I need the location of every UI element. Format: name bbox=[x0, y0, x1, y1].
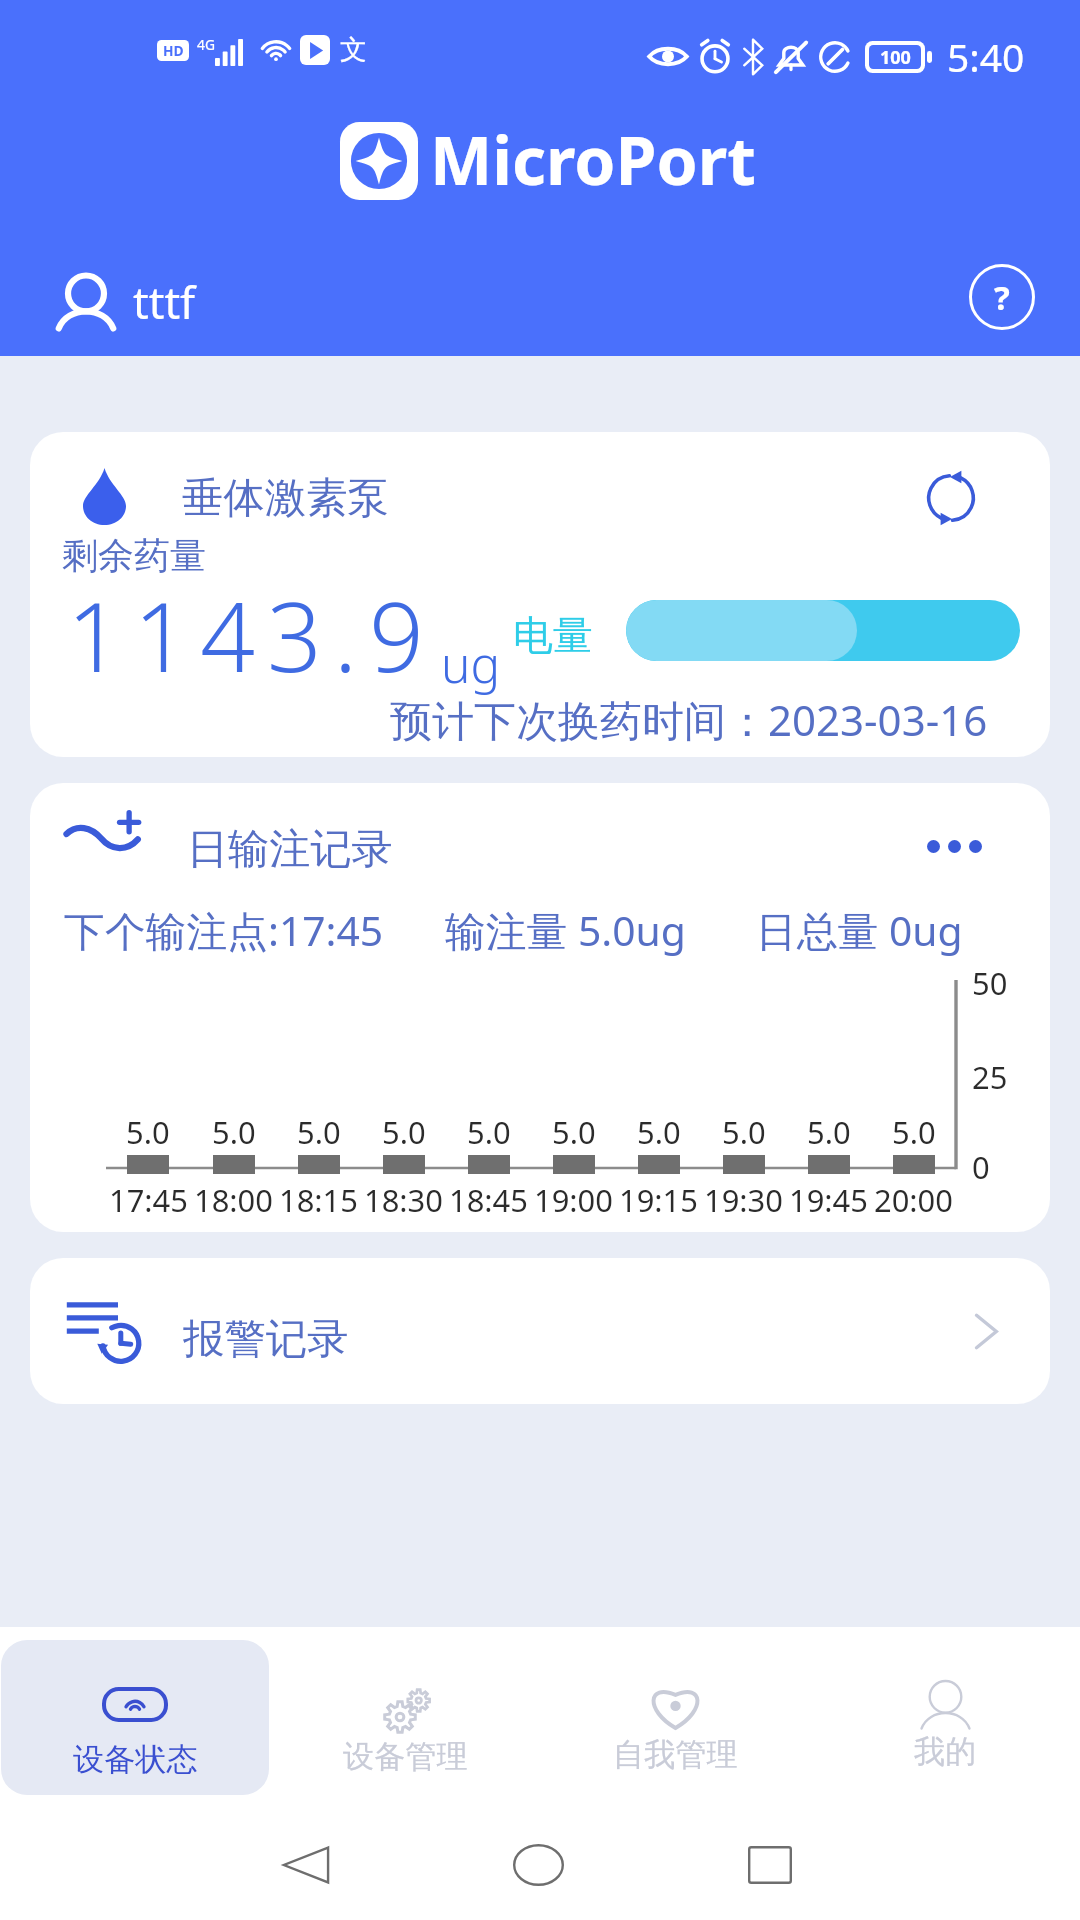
button[interactable]: Home bbox=[493, 1820, 583, 1910]
staticText: 5.0 bbox=[467, 1111, 511, 1153]
staticText: 100 bbox=[880, 45, 911, 69]
staticText: ? bbox=[994, 275, 1010, 320]
staticText: 输注量 5.0ug bbox=[445, 902, 686, 958]
staticText: 18:00 bbox=[194, 1179, 273, 1221]
staticText: 我的 bbox=[914, 1732, 977, 1771]
button[interactable]: Back bbox=[261, 1820, 351, 1910]
staticText: 预计下次换药时间：2023-03-16 bbox=[390, 691, 988, 748]
staticText: 19:00 bbox=[534, 1179, 613, 1221]
staticText: MicroPort bbox=[430, 114, 756, 204]
staticText: 下个输注点:17:45 bbox=[64, 902, 384, 958]
staticText: 日输注记录 bbox=[187, 823, 393, 875]
button[interactable]: 自我管理 bbox=[540, 1627, 810, 1817]
button[interactable]: 日输注记录 bbox=[30, 783, 1050, 1232]
staticText: 5.0 bbox=[382, 1111, 426, 1153]
staticText: 5.0 bbox=[637, 1111, 681, 1153]
staticText: 报警记录 bbox=[183, 1313, 349, 1365]
button[interactable]: 我的 bbox=[810, 1627, 1080, 1817]
button[interactable]: Recent apps bbox=[725, 1820, 815, 1910]
button[interactable]: 垂体激素泵 bbox=[30, 432, 1050, 757]
staticText: 4G bbox=[197, 35, 215, 54]
staticText: 20:00 bbox=[874, 1179, 953, 1221]
staticText: 5.0 bbox=[722, 1111, 766, 1153]
staticText: 设备状态 bbox=[73, 1740, 198, 1779]
staticText: 17:45 bbox=[109, 1179, 188, 1221]
staticText: 自我管理 bbox=[613, 1735, 738, 1774]
staticText: ug bbox=[441, 630, 501, 697]
button[interactable]: Help bbox=[960, 255, 1044, 339]
staticText: 1143.9 bbox=[67, 569, 436, 700]
button[interactable]: More options bbox=[915, 807, 993, 885]
staticText: 19:15 bbox=[619, 1179, 698, 1221]
button[interactable]: 报警记录 bbox=[30, 1258, 1050, 1404]
staticText: tttf bbox=[133, 272, 196, 331]
staticText: HD bbox=[163, 41, 184, 60]
staticText: 18:30 bbox=[364, 1179, 443, 1221]
staticText: 5.0 bbox=[892, 1111, 936, 1153]
staticText: 50 bbox=[972, 962, 1008, 1004]
staticText: 文 bbox=[340, 33, 367, 67]
staticText: 5.0 bbox=[552, 1111, 596, 1153]
staticText: 日总量 0ug bbox=[756, 902, 963, 958]
button[interactable]: 设备管理 bbox=[270, 1627, 540, 1817]
staticText: 19:30 bbox=[704, 1179, 783, 1221]
staticText: 19:45 bbox=[789, 1179, 868, 1221]
staticText: 5.0 bbox=[807, 1111, 851, 1153]
staticText: 垂体激素泵 bbox=[182, 472, 389, 524]
staticText: 设备管理 bbox=[343, 1737, 468, 1776]
staticText: 电量 bbox=[513, 611, 593, 661]
button[interactable]: Refresh bbox=[912, 459, 990, 537]
staticText: 18:45 bbox=[449, 1179, 528, 1221]
button[interactable]: tttf bbox=[45, 261, 208, 344]
staticText: 5.0 bbox=[126, 1111, 170, 1153]
staticText: 5.0 bbox=[297, 1111, 341, 1153]
staticText: 25 bbox=[972, 1056, 1008, 1098]
staticText: 5.0 bbox=[212, 1111, 256, 1153]
staticText: 剩余药量 bbox=[62, 533, 206, 578]
staticText: 18:15 bbox=[279, 1179, 358, 1221]
button[interactable]: 设备状态 bbox=[0, 1627, 270, 1817]
staticText: 5:40 bbox=[947, 30, 1025, 83]
staticText: 0 bbox=[972, 1146, 990, 1188]
